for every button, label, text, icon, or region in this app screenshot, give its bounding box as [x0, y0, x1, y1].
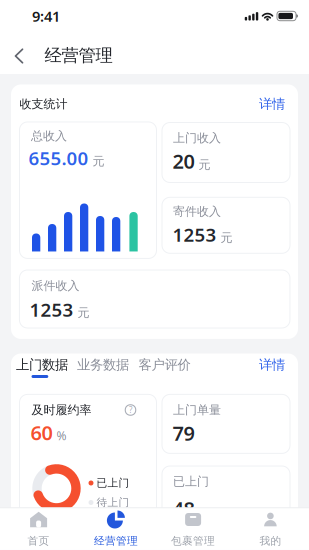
- button[interactable]: 首页: [0, 509, 77, 549]
- staticText: 及时履约率: [31, 403, 91, 417]
- staticText: 元: [198, 157, 210, 172]
- button[interactable]: 客户评价: [135, 352, 195, 378]
- staticText: 经营管理: [94, 534, 138, 547]
- staticText: 60: [30, 419, 52, 446]
- staticText: 包裹管理: [171, 534, 215, 547]
- staticText: 元: [77, 305, 89, 320]
- staticText: ?: [129, 405, 132, 415]
- button[interactable]: 详情: [225, 350, 285, 380]
- staticText: 48: [172, 495, 194, 522]
- staticText: 客户评价: [139, 356, 191, 373]
- button[interactable]: 业务数据: [73, 352, 133, 378]
- staticText: 上门数据: [16, 356, 68, 373]
- staticText: 首页: [28, 534, 50, 547]
- staticText: 元: [92, 154, 104, 169]
- staticText: 655.00: [28, 146, 88, 170]
- button[interactable]: 经营管理: [77, 509, 154, 549]
- staticText: 派件收入: [31, 278, 79, 293]
- staticText: 元: [220, 230, 232, 245]
- staticText: 9:41: [32, 6, 60, 26]
- staticText: 上门单量: [173, 402, 221, 417]
- staticText: %: [56, 428, 66, 444]
- staticText: 待上门: [96, 496, 129, 509]
- staticText: 详情: [259, 96, 285, 112]
- staticText: 收支统计: [19, 97, 67, 111]
- staticText: 详情: [259, 356, 285, 373]
- staticText: 1253: [29, 297, 73, 322]
- button[interactable]: [3, 37, 34, 75]
- staticText: 我的: [259, 534, 281, 547]
- button[interactable]: 包裹管理: [155, 509, 232, 549]
- staticText: 业务数据: [77, 356, 129, 373]
- staticText: 上门收入: [173, 131, 221, 145]
- staticText: 已上门: [96, 476, 129, 489]
- staticText: 1253: [172, 222, 216, 247]
- button[interactable]: 上门数据: [12, 352, 72, 378]
- button[interactable]: 我的: [232, 509, 309, 549]
- staticText: 寄件收入: [173, 204, 221, 219]
- staticText: 20: [172, 148, 194, 174]
- button[interactable]: 详情: [225, 89, 285, 119]
- staticText: 79: [172, 420, 194, 446]
- staticText: 已上门: [173, 474, 209, 489]
- staticText: 经营管理: [44, 45, 112, 66]
- staticText: 总收入: [31, 129, 67, 143]
